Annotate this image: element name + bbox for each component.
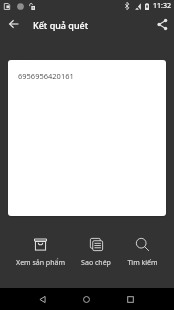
staticText: Xem sản phẩm xyxy=(16,258,65,268)
button[interactable]: Share xyxy=(148,13,174,36)
button[interactable]: View product xyxy=(16,238,65,268)
button[interactable]: Recent apps xyxy=(108,288,152,310)
button[interactable]: Home xyxy=(64,288,108,310)
button[interactable]: Back xyxy=(0,12,28,35)
button[interactable]: Copy xyxy=(81,238,111,268)
button[interactable]: Search xyxy=(127,238,158,268)
staticText: Sao chép xyxy=(81,258,111,268)
staticText: 11:32 xyxy=(153,1,171,11)
staticText: Tìm kiếm xyxy=(127,258,158,268)
staticText: Kết quả quét xyxy=(33,19,89,31)
button[interactable]: Back xyxy=(21,288,64,310)
staticText: 6956956420161 xyxy=(18,71,74,81)
